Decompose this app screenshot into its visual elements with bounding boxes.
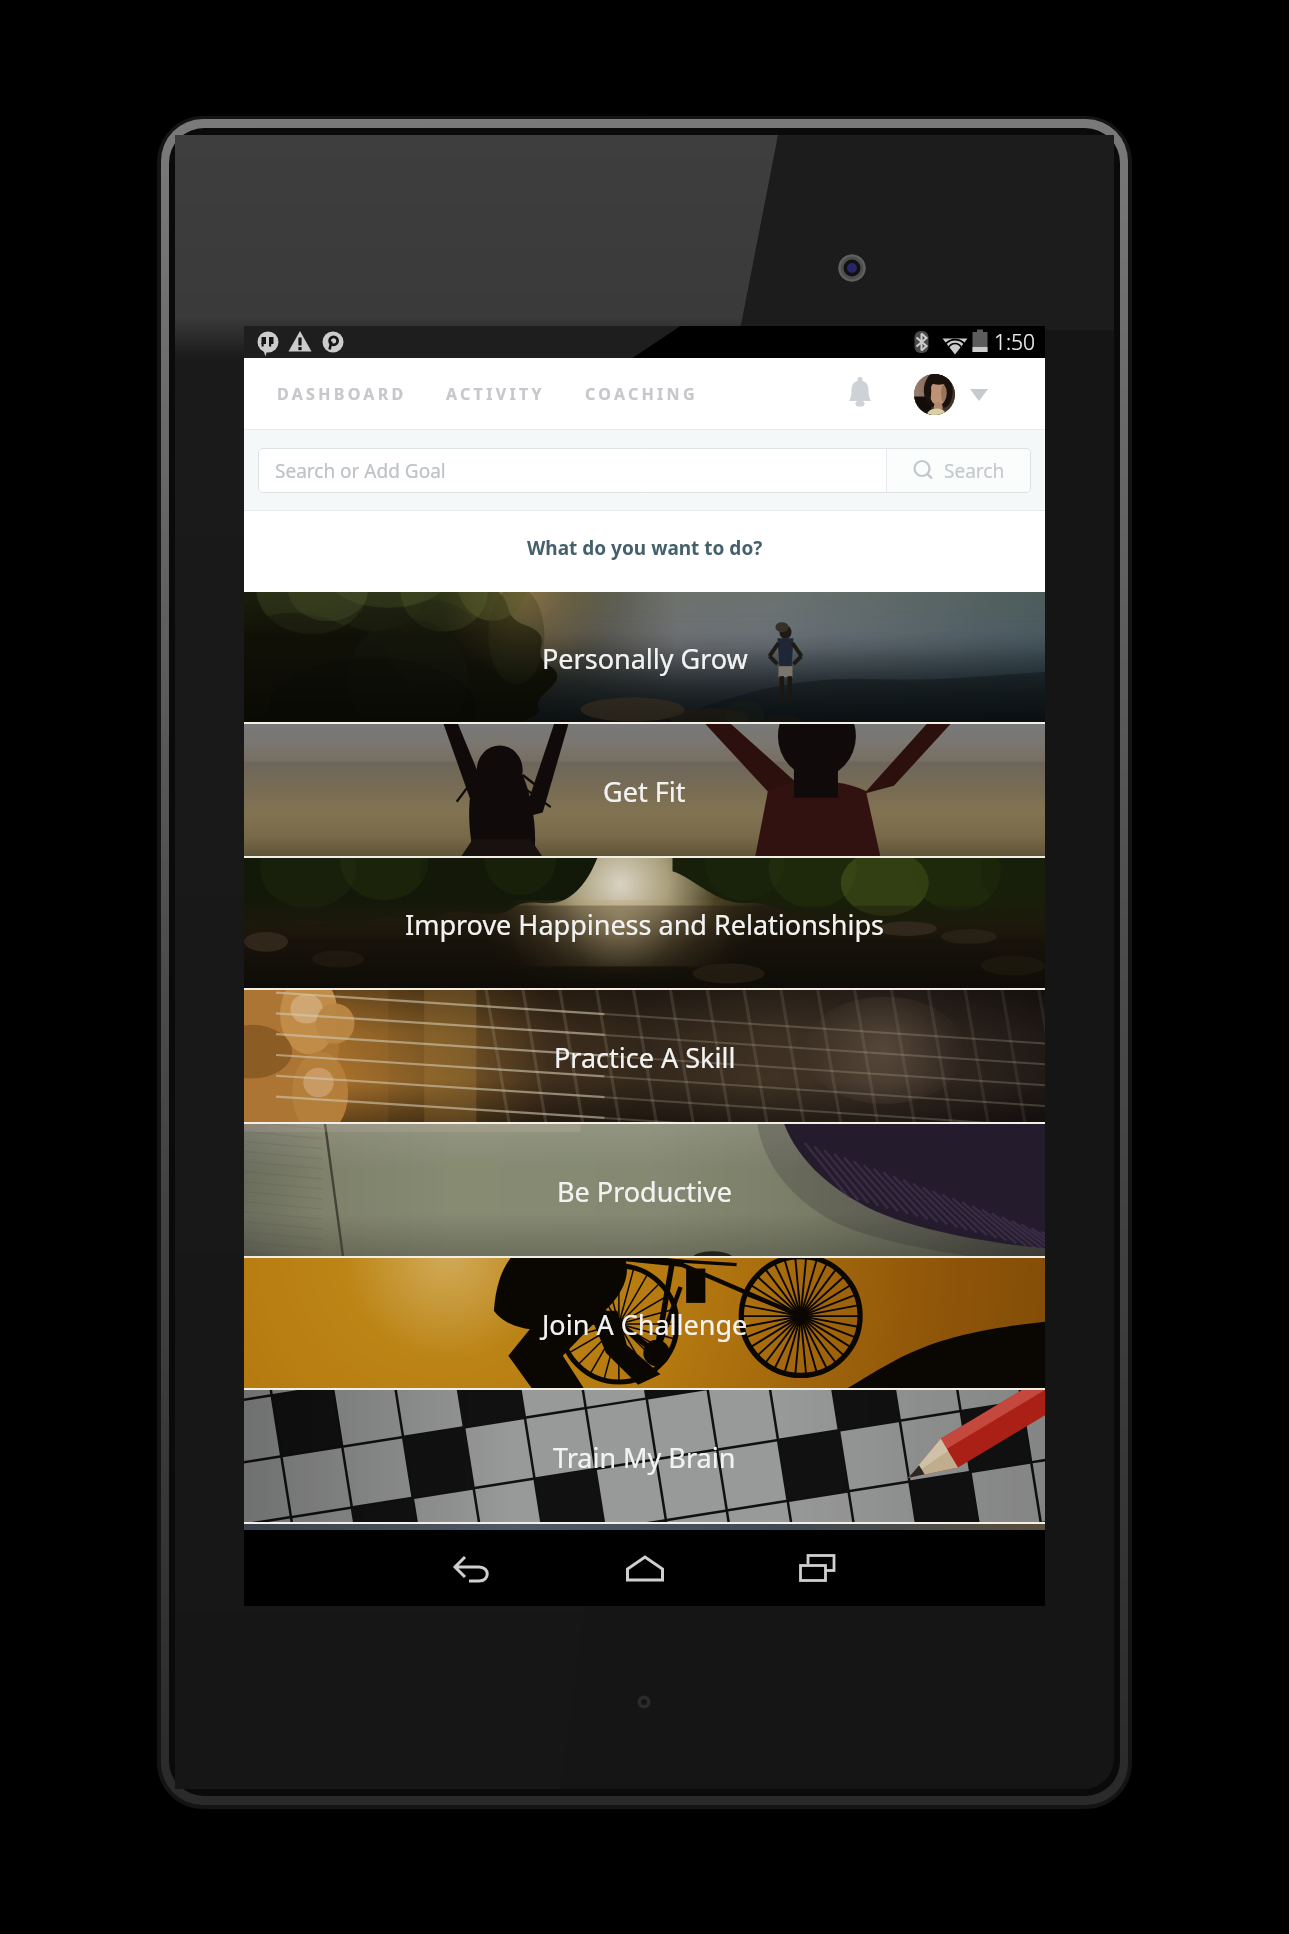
button[interactable]: More goals — [244, 1524, 1045, 1530]
staticText: DASHBOARD — [277, 383, 407, 405]
button[interactable]: Improve Happiness and Relationships — [244, 858, 1045, 990]
button[interactable]: Get Fit — [244, 724, 1045, 858]
staticText: What do you want to do? — [527, 535, 763, 561]
staticText: Train My Brain — [553, 1439, 736, 1476]
staticText: COACHING — [585, 383, 698, 405]
button[interactable]: Be Productive — [244, 1124, 1045, 1258]
staticText: Personally Grow — [542, 640, 748, 677]
button[interactable]: Train My Brain — [244, 1390, 1045, 1524]
button[interactable]: Account menu — [965, 380, 993, 408]
button[interactable]: Home — [603, 1530, 687, 1606]
button[interactable]: Search — [887, 448, 1031, 493]
button[interactable]: Join A Challenge — [244, 1258, 1045, 1390]
button[interactable]: Notifications — [838, 372, 882, 416]
button[interactable]: Back — [430, 1530, 514, 1606]
staticText: Join A Challenge — [542, 1306, 748, 1343]
button[interactable]: Recent apps — [775, 1530, 859, 1606]
staticText: Practice A Skill — [554, 1039, 736, 1076]
staticText: ACTIVITY — [446, 383, 545, 405]
button[interactable]: Search or Add Goal — [258, 448, 886, 493]
button[interactable]: Profile — [914, 374, 955, 415]
button[interactable]: COACHING — [581, 358, 702, 430]
staticText: Search or Add Goal — [275, 458, 446, 484]
button[interactable]: Personally Grow — [244, 592, 1045, 724]
button[interactable]: ACTIVITY — [442, 358, 549, 430]
staticText: Get Fit — [603, 773, 686, 810]
button[interactable]: DASHBOARD — [273, 358, 411, 430]
button[interactable]: Practice A Skill — [244, 990, 1045, 1124]
staticText: Be Productive — [557, 1173, 732, 1210]
staticText: Improve Happiness and Relationships — [405, 906, 884, 943]
staticText: Search — [944, 458, 1005, 484]
staticText: 1:50 — [994, 328, 1036, 357]
